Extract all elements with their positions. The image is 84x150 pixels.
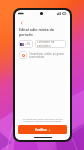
staticText: Cimadero de periodoto xyxy=(37,40,64,48)
staticText: +55 xyxy=(25,42,31,46)
staticText: Verifica xyxy=(35,128,47,132)
staticText: Cimanlema ordito ao grano comorcalato xyxy=(29,52,66,58)
staticText: Ao continuar, voce concorda com os termo… xyxy=(19,117,66,123)
button[interactable]: Cimanlema ordito ao grano comorcalato xyxy=(19,51,66,59)
button[interactable]: Verifica xyxy=(18,125,67,134)
button[interactable]: +55 xyxy=(19,40,66,48)
staticText: Edital odio mieta da periodo xyxy=(19,27,66,37)
button[interactable]: Back xyxy=(18,19,25,26)
button[interactable]: Cimadero de periodoto xyxy=(37,40,64,48)
